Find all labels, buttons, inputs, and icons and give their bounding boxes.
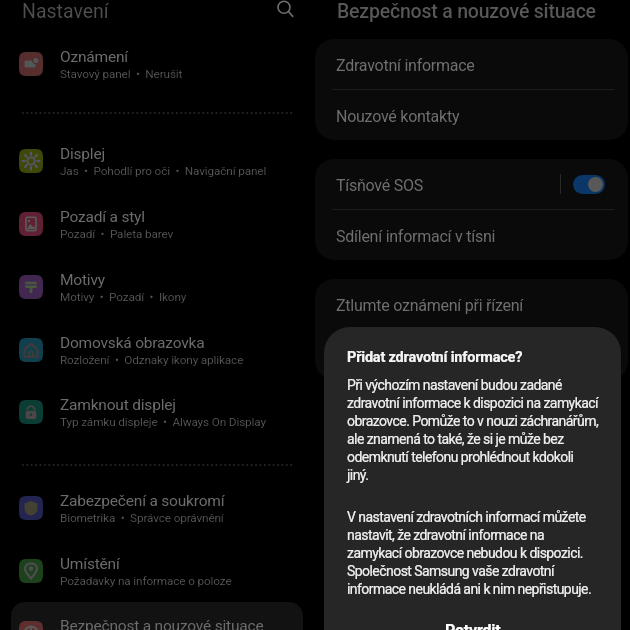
button[interactable]: Nouzové kontakty — [315, 90, 628, 140]
button[interactable]: Pozadí a styl — [11, 193, 303, 255]
staticText: Typ zámku displeje • Always On Display — [60, 415, 266, 429]
staticText: Jas • Pohodlí pro oči • Navigační panel — [60, 164, 267, 178]
staticText: Zamknout displej — [60, 396, 176, 414]
staticText: Bezpečnost a nouzové situace — [337, 0, 596, 23]
staticText: Motivy — [60, 271, 105, 289]
button[interactable]: Motivy — [11, 256, 303, 318]
button[interactable]: Displej — [11, 130, 303, 192]
staticText: Umístění — [60, 555, 120, 573]
staticText: Rozložení • Odznaky ikony aplikace — [60, 353, 244, 367]
staticText: Pozadí a styl — [60, 208, 145, 226]
staticText: Domovská obrazovka — [60, 334, 205, 352]
button[interactable]: Bezpečnost a nouzové situace — [11, 602, 303, 630]
staticText: Motivy • Pozadí • Ikony — [60, 290, 187, 304]
button[interactable]: Zabezpečení a soukromí — [11, 477, 303, 539]
staticText: Ztlumte oznámení při řízení — [336, 296, 616, 315]
button[interactable]: Oznámení — [11, 33, 303, 95]
staticText: Stavový panel • Nerušit — [60, 67, 183, 81]
staticText: Přidat zdravotní informace? — [347, 349, 523, 366]
button[interactable]: Sdílení informací v tísni — [315, 210, 628, 260]
button[interactable]: Zamknout displej — [11, 381, 303, 443]
button[interactable]: Search — [272, 0, 298, 22]
staticText: Bezpečnost a nouzové situace — [60, 617, 264, 630]
button[interactable]: Ztlumte oznámení při řízení — [315, 279, 628, 329]
button[interactable]: Potvrdit — [324, 621, 621, 630]
button[interactable]: Zdravotní informace — [315, 39, 628, 89]
staticText: Biometrika • Správce oprávnění — [60, 511, 224, 525]
staticText: V nastavení zdravotních informací můžete… — [347, 509, 592, 598]
staticText: Tísňové SOS — [336, 176, 560, 195]
button[interactable]: Tísňové SOS — [315, 159, 628, 209]
staticText: Zabezpečení a soukromí — [60, 492, 225, 510]
staticText: Zdravotní informace — [336, 56, 616, 75]
staticText: Nastavení — [22, 0, 109, 23]
button[interactable]: Emergency SOS toggle — [573, 175, 605, 194]
staticText: Sdílení informací v tísni — [336, 227, 616, 246]
button[interactable]: Domovská obrazovka — [11, 319, 303, 381]
staticText: Pozadí • Paleta barev — [60, 227, 174, 241]
staticText: Oznámení — [60, 48, 128, 66]
staticText: Displej — [60, 145, 105, 163]
staticText: Potvrdit — [445, 621, 501, 630]
staticText: Požadavky na informace o poloze — [60, 574, 232, 588]
staticText: Nouzové kontakty — [336, 107, 616, 126]
staticText: Při výchozím nastavení budou zadané zdra… — [347, 377, 599, 484]
button[interactable]: Umístění — [11, 540, 303, 602]
